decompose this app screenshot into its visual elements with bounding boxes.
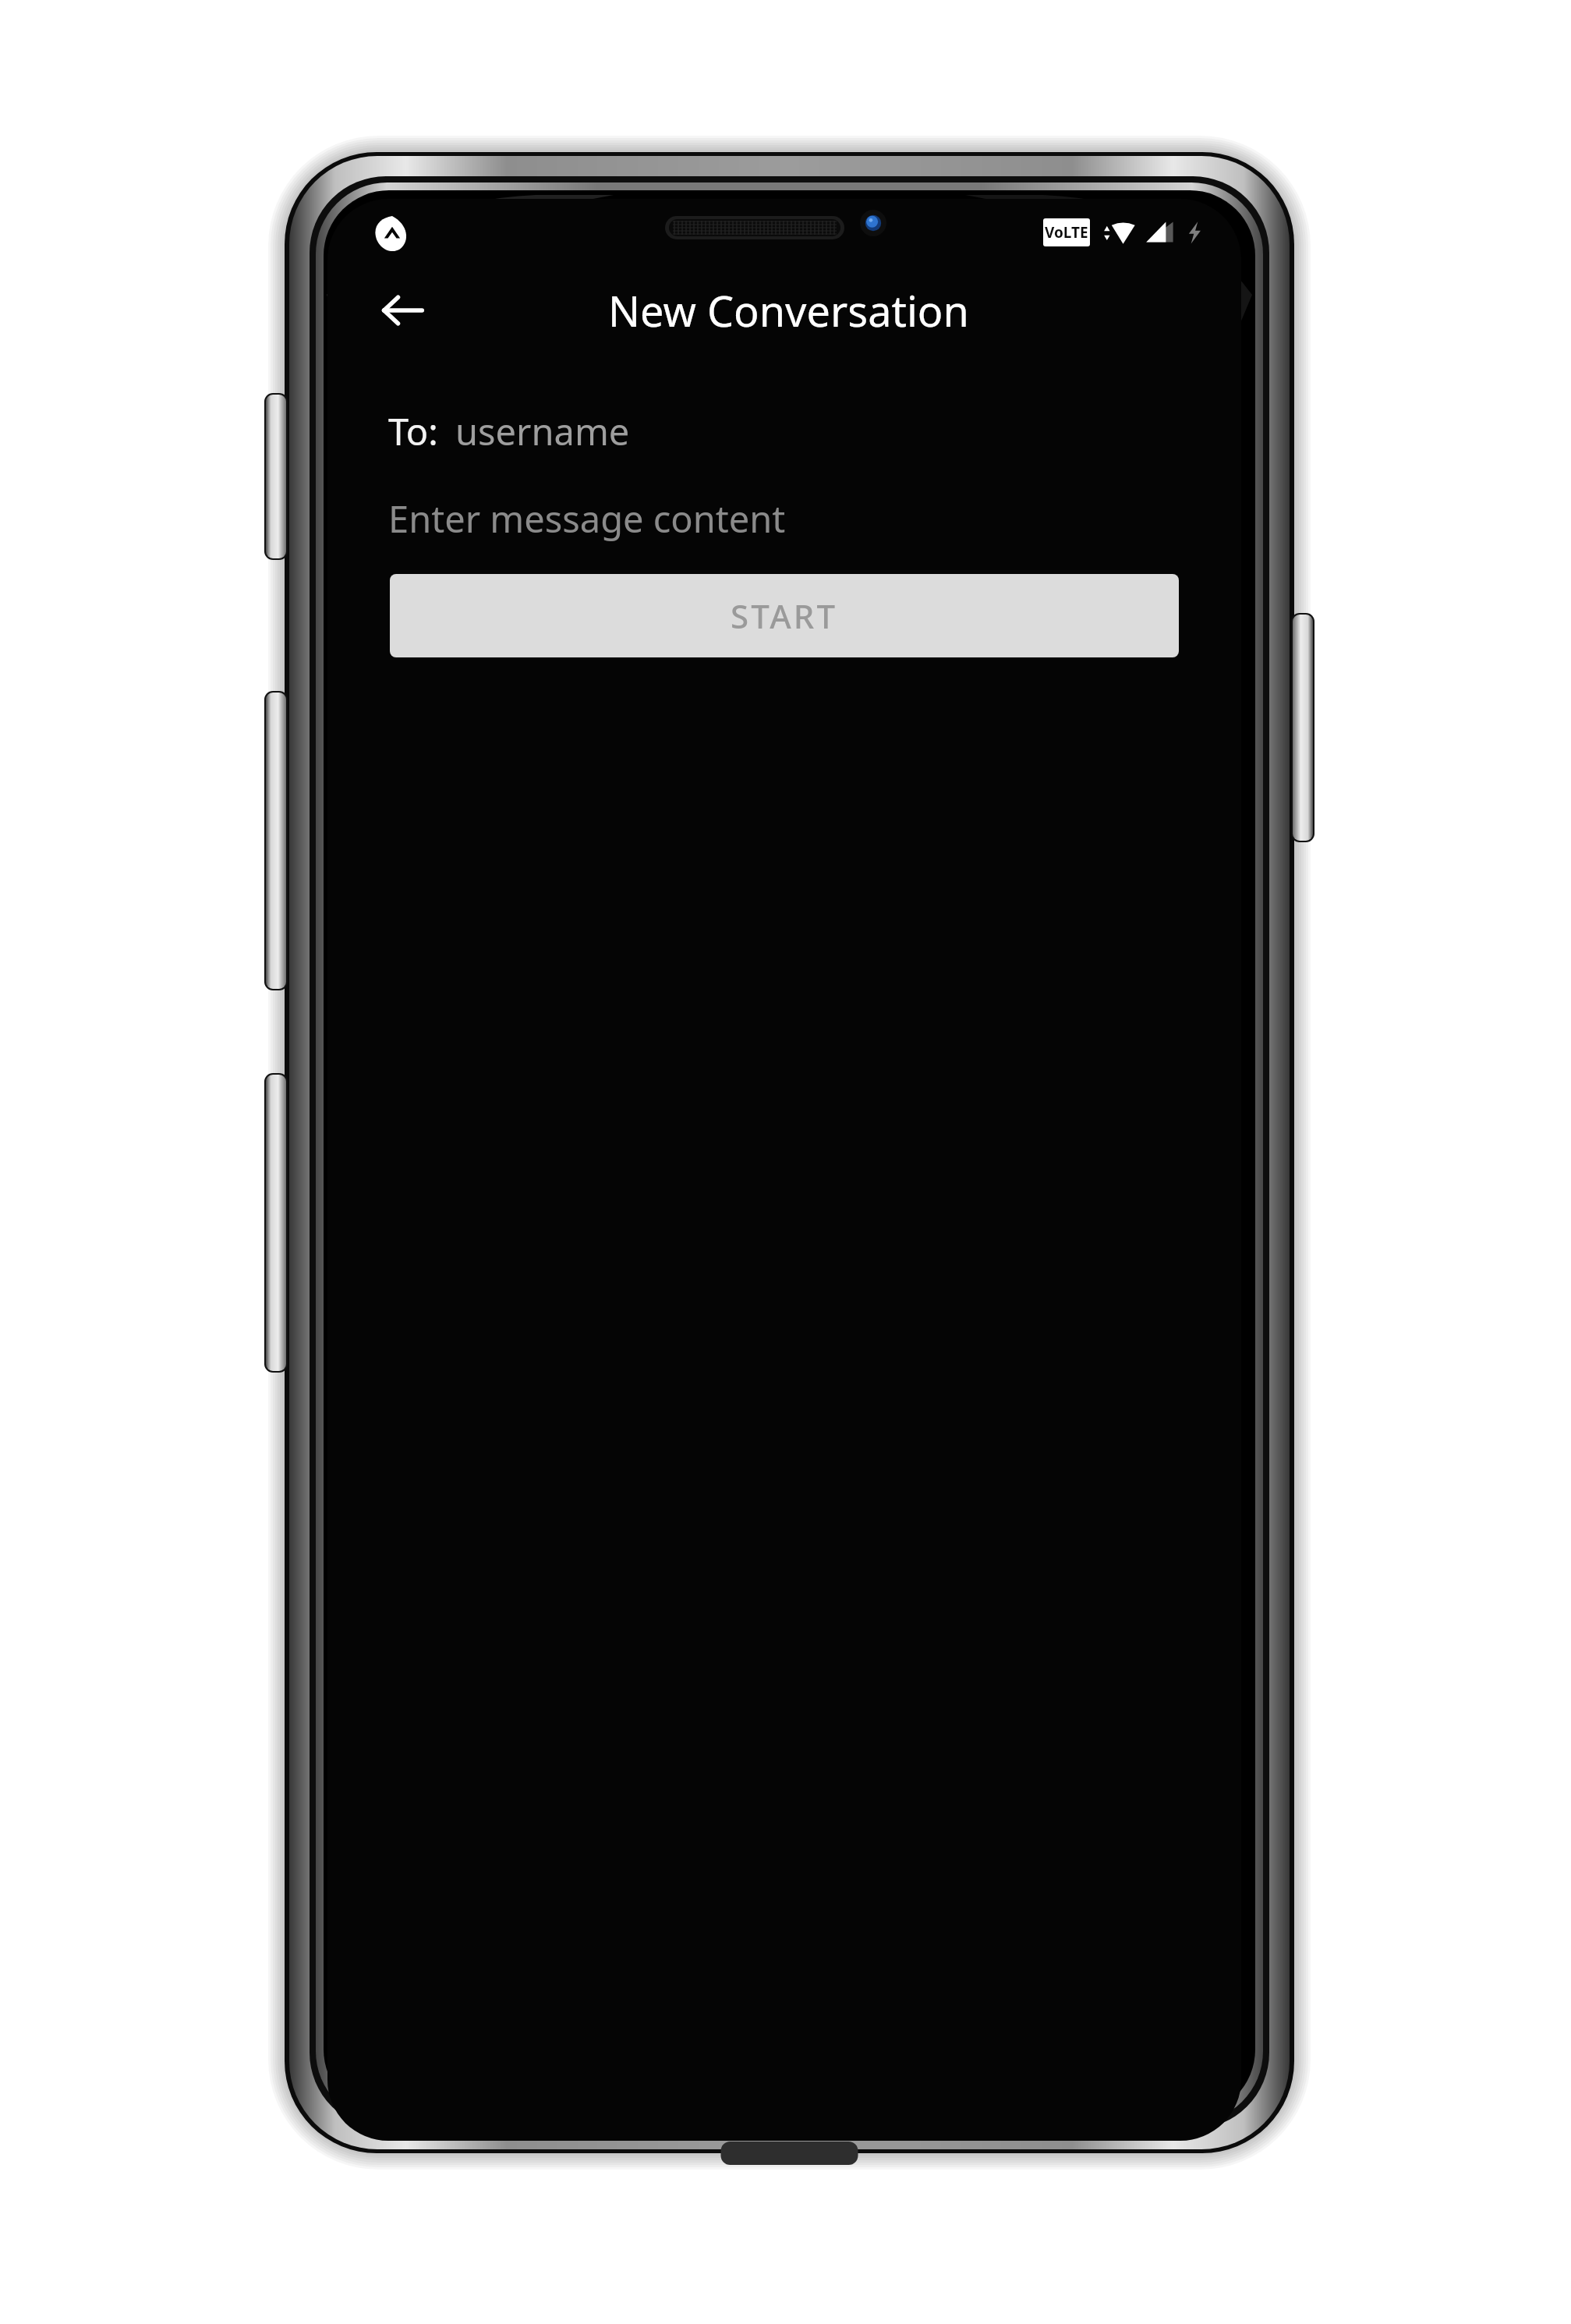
button[interactable]: Back	[360, 269, 442, 351]
staticText: START	[731, 593, 838, 638]
staticText: username	[455, 406, 630, 456]
staticText: VoLTE	[1045, 222, 1088, 243]
staticText: New Conversation	[608, 282, 969, 339]
button[interactable]: Enter message content	[327, 487, 1241, 551]
button[interactable]: To:	[327, 398, 1241, 465]
staticText: Enter message content	[388, 494, 786, 544]
button[interactable]: START	[390, 574, 1179, 657]
staticText: To:	[388, 406, 438, 456]
